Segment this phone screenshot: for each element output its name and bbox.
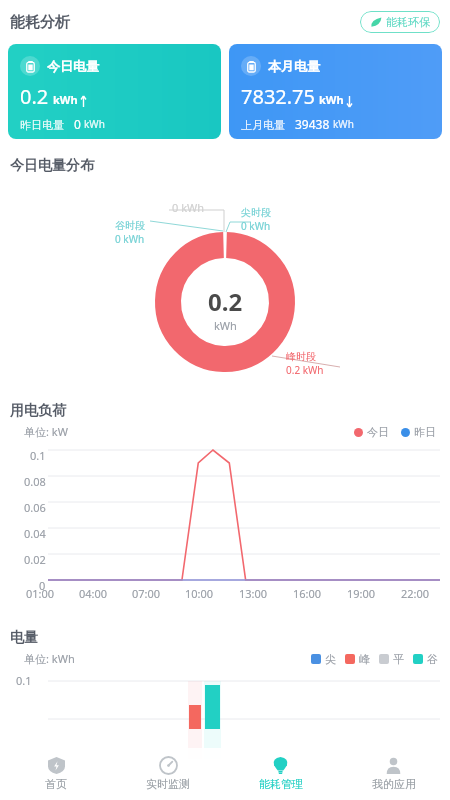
button[interactable]: 实时监测 xyxy=(112,757,224,791)
button[interactable]: 首页 xyxy=(0,757,112,791)
staticText: kWh xyxy=(84,117,105,131)
staticText: 今日电量 xyxy=(47,58,99,74)
staticText: 0.02 xyxy=(24,552,46,567)
staticText: 01:00 xyxy=(26,586,55,601)
staticText: 13:00 xyxy=(239,586,268,601)
staticText: 本月电量 xyxy=(268,58,320,74)
staticText: 能耗管理 xyxy=(259,777,303,791)
staticText: 首页 xyxy=(45,777,67,791)
staticText: 0 xyxy=(39,578,46,593)
staticText: 16:00 xyxy=(293,586,322,601)
staticText: 昨日电量 xyxy=(20,118,64,132)
staticText: 0 kWh xyxy=(115,232,145,246)
button[interactable]: 本月电量 xyxy=(229,44,442,139)
staticText: 0 kWh xyxy=(241,219,271,233)
staticText: 0.2 xyxy=(20,83,49,110)
staticText: kWh xyxy=(53,92,78,107)
staticText: 0.1 xyxy=(16,673,32,688)
staticText: 今日电量分布 xyxy=(10,157,94,175)
staticText: kWh xyxy=(214,318,237,333)
button[interactable]: 能耗管理 xyxy=(224,757,337,791)
staticText: 用电负荷 xyxy=(10,402,66,420)
staticText: 0.1 xyxy=(30,448,46,463)
staticText: 电量 xyxy=(10,629,38,647)
staticText: 07:00 xyxy=(132,586,161,601)
staticText: 04:00 xyxy=(79,586,108,601)
staticText: 今日 xyxy=(367,425,389,439)
staticText: kWh xyxy=(319,92,344,107)
staticText: 尖时段 xyxy=(241,206,271,219)
staticText: 谷 xyxy=(427,652,438,666)
staticText: 平 xyxy=(393,652,404,666)
staticText: 7832.75 xyxy=(241,83,315,110)
staticText: 10:00 xyxy=(185,586,214,601)
staticText: 19:00 xyxy=(347,586,376,601)
staticText: 单位: kW xyxy=(24,424,68,439)
staticText: 峰时段 xyxy=(286,350,316,363)
staticText: 上月电量 xyxy=(241,118,285,132)
button[interactable]: 能耗环保 xyxy=(360,11,440,33)
staticText: 我的应用 xyxy=(372,777,416,791)
staticText: 0.2 kWh xyxy=(286,363,324,377)
staticText: 39438 xyxy=(295,116,330,132)
staticText: 22:00 xyxy=(401,586,430,601)
staticText: 单位: kWh xyxy=(24,651,75,666)
staticText: 能耗分析 xyxy=(10,13,70,32)
staticText: 0.04 xyxy=(24,526,46,541)
staticText: 谷时段 xyxy=(115,219,145,232)
staticText: 实时监测 xyxy=(146,777,190,791)
staticText: 能耗环保 xyxy=(386,15,430,29)
staticText: 0 xyxy=(74,116,81,132)
staticText: 0.2 xyxy=(208,285,243,318)
staticText: 昨日 xyxy=(414,425,436,439)
staticText: 0.08 xyxy=(24,474,46,489)
button[interactable]: 今日电量 xyxy=(8,44,221,139)
staticText: 峰 xyxy=(359,652,370,666)
staticText: kWh xyxy=(333,117,354,131)
button[interactable]: 我的应用 xyxy=(337,757,450,791)
staticText: 0.06 xyxy=(24,500,46,515)
staticText: 0 kWh xyxy=(172,200,205,215)
staticText: 尖 xyxy=(325,652,336,666)
